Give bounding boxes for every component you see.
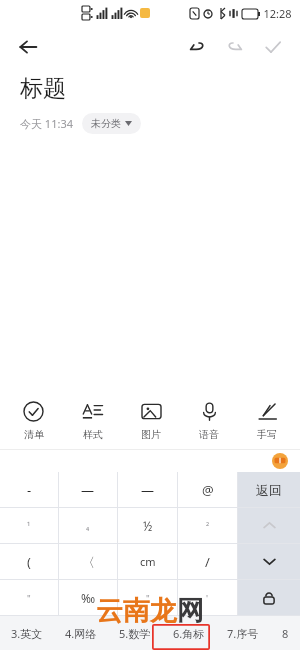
staticText: 标题 [20,74,66,103]
staticText: — [141,481,155,499]
staticText: 7.序号 [227,626,259,641]
staticText: @ [202,481,214,499]
staticText: - [27,481,32,499]
button[interactable]: ¹ [0,508,58,543]
button[interactable]: " [0,580,58,615]
staticText: ' [206,592,209,604]
staticText: / [205,553,210,571]
staticText: 今天 11:34 [20,116,73,131]
staticText: ² [206,520,210,532]
button[interactable]: Page down [238,544,300,579]
button[interactable]: 〈 [59,544,117,579]
button[interactable]: ' [178,580,237,615]
button[interactable]: 3.英文 [0,616,54,650]
button[interactable]: @ [178,472,237,507]
button[interactable]: Return [238,472,300,507]
staticText: — [81,481,95,499]
staticText: 网 [177,594,204,628]
button[interactable]: 7.序号 [216,616,270,650]
staticText: 未分类 [91,117,121,130]
staticText: " [146,592,150,604]
staticText: 5.数学 [119,626,151,641]
button[interactable]: — [59,472,117,507]
button[interactable]: Back [10,29,46,65]
button[interactable]: Lock [238,580,300,615]
button[interactable]: ² [178,508,237,543]
button[interactable]: 6.角标 [162,616,216,650]
button[interactable]: ₄ [59,508,117,543]
button[interactable]: ‰ [59,580,117,615]
button[interactable]: 图片 [122,393,180,449]
button[interactable]: " [118,580,177,615]
staticText: 清单 [24,428,44,441]
button[interactable]: ( [0,544,58,579]
staticText: ₄ [86,520,90,532]
staticText: cm [140,554,156,569]
button[interactable]: 4.网络 [54,616,108,650]
staticText: ½ [143,518,153,534]
staticText: ‰ [81,590,96,606]
button[interactable]: 手写 [238,393,296,449]
staticText: 云 [96,594,123,628]
button[interactable]: 语音 [180,393,238,449]
button[interactable]: cm [118,544,177,579]
staticText: 龙 [150,594,177,628]
button[interactable]: ½ [118,508,177,543]
staticText: 6.角标 [173,626,205,641]
button[interactable]: Emoji [272,453,288,469]
button[interactable]: Redo [216,28,254,66]
button[interactable]: 清单 [4,393,63,449]
staticText: 语音 [199,428,219,441]
staticText: 南 [123,594,150,628]
button[interactable]: Undo [178,28,216,66]
staticText: ¹ [27,520,31,532]
button[interactable]: — [118,472,177,507]
staticText: 返回 [256,482,282,498]
staticText: 3.英文 [11,626,43,641]
staticText: ( [27,553,31,571]
staticText: 图片 [141,428,161,441]
button[interactable]: / [178,544,237,579]
staticText: " [27,592,31,604]
button[interactable]: 样式 [63,393,122,449]
button[interactable]: 8 [270,616,300,650]
staticText: 手写 [257,428,277,441]
button[interactable]: 5.数学 [108,616,162,650]
staticText: 8 [282,626,289,641]
button[interactable]: Done [254,28,292,66]
staticText: 样式 [83,428,103,441]
button[interactable]: 未分类 [82,113,141,134]
staticText: 〈 [82,554,95,570]
staticText: 12:28 [263,6,292,21]
staticText: 4.网络 [65,626,97,641]
button[interactable]: - [0,472,58,507]
